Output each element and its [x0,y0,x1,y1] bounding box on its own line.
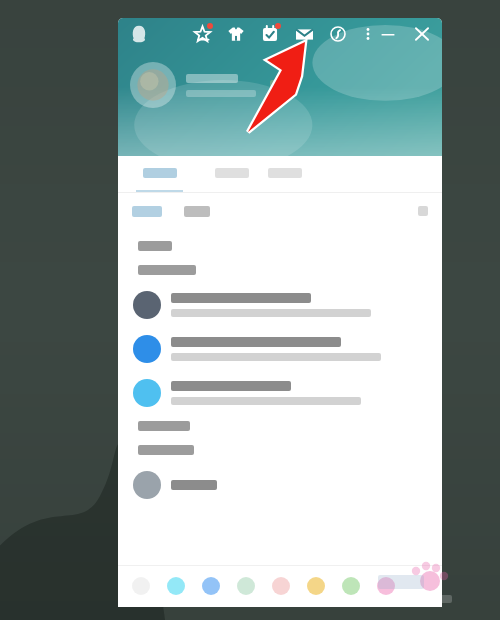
button[interactable]: QQ logo [128,23,150,45]
button[interactable] [118,283,442,327]
button[interactable] [132,206,162,217]
button[interactable]: Music [328,24,348,44]
button[interactable] [184,206,210,217]
button[interactable] [118,327,442,371]
button[interactable] [118,259,442,281]
button[interactable]: Files [301,571,331,601]
button[interactable] [118,235,442,257]
button[interactable]: Mail [294,24,314,44]
button[interactable] [118,463,442,507]
button[interactable] [118,439,442,461]
button[interactable]: Favourites [266,571,296,601]
button[interactable] [118,415,442,437]
button[interactable] [130,62,296,108]
button[interactable] [118,156,201,190]
button[interactable]: Calendar [260,24,280,44]
button[interactable]: More [371,571,401,601]
button[interactable]: Dress up [226,24,246,44]
button[interactable]: Apps [336,571,366,601]
button[interactable]: Close [412,24,432,44]
button[interactable] [118,371,442,415]
button[interactable]: Favourites [192,24,212,44]
button[interactable]: Voice call [196,571,226,601]
button[interactable]: Minimize [378,24,398,44]
button[interactable]: Video call [161,571,191,601]
button[interactable] [262,156,308,190]
button[interactable]: Filter [418,206,428,216]
button[interactable] [201,156,262,190]
button[interactable]: Menu [126,571,156,601]
button[interactable]: More options [358,24,378,44]
button[interactable]: Group [231,571,261,601]
